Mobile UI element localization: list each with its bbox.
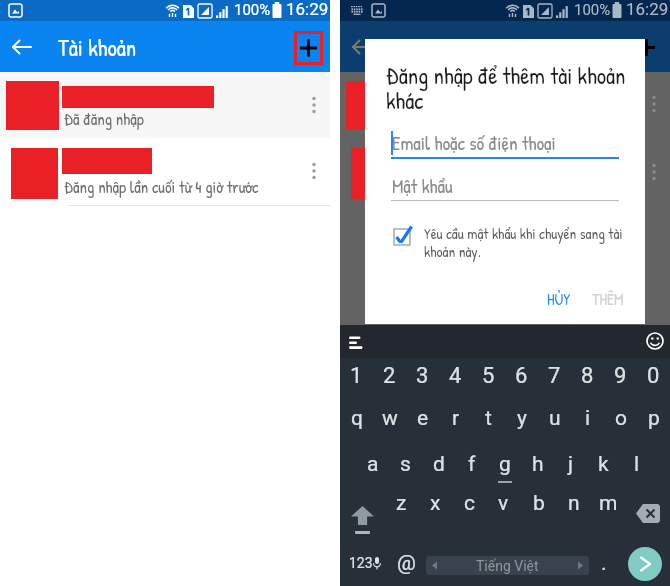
button[interactable]: Backspace [626,480,670,526]
button[interactable]: Enter [628,547,662,581]
staticText: x [430,491,441,516]
staticText: u [549,406,561,431]
staticText: 1 [350,363,363,389]
button[interactable]: q [340,395,373,441]
button[interactable]: d [422,441,455,487]
button[interactable]: 4 [439,354,472,398]
staticText: a [367,452,379,477]
button[interactable]: 2 [373,354,406,398]
button[interactable]: e [406,395,439,441]
button[interactable]: t [472,395,505,441]
staticText: o [615,406,627,431]
button[interactable]: x [418,480,452,526]
staticText: t [485,406,492,431]
button[interactable]: f [455,441,488,487]
staticText: THÊM [592,288,624,310]
button[interactable]: Add account [294,31,323,65]
staticText: d [433,452,445,477]
button[interactable]: r [439,395,472,441]
button[interactable]: Keyboard settings [342,328,370,356]
button[interactable]: k [587,441,620,487]
staticText: q [351,406,363,431]
staticText: 100% [234,1,271,19]
button[interactable]: More options [301,152,327,190]
staticText: e [417,406,429,431]
staticText: w [382,406,398,431]
button[interactable]: 7 [538,354,571,398]
staticText: Yêu cầu mật khẩu khi chuyển sang tài kho… [424,223,624,262]
button[interactable]: g [488,441,521,487]
staticText: HỦY [547,288,571,310]
button[interactable]: w [373,395,406,441]
button[interactable]: Emoji [641,327,669,355]
button[interactable]: j [554,441,587,487]
staticText: 100% [574,1,611,19]
staticText: 16:29 [286,0,329,19]
button[interactable]: Back [8,33,36,61]
button[interactable]: . [592,546,616,580]
button[interactable]: 0 [637,354,670,398]
button[interactable]: 1 [340,354,373,398]
staticText: j [568,452,574,477]
button[interactable]: n [556,480,591,526]
button[interactable]: o [604,395,637,441]
button[interactable]: THÊM [583,287,633,311]
button[interactable]: 6 [505,354,538,398]
button[interactable]: c [452,480,486,526]
button[interactable]: i [571,395,604,441]
staticText: v [498,491,509,516]
staticText: Mật khẩu [392,173,453,199]
button[interactable]: a [357,441,389,487]
button[interactable]: Tiếng Việt [426,556,589,575]
staticText: n [568,491,580,516]
button[interactable]: Numbers and voice input [344,549,386,577]
button[interactable]: z [384,480,418,526]
button[interactable]: 8 [571,354,604,398]
staticText: b [533,491,545,516]
staticText: p [648,406,660,431]
staticText: Đã đăng nhập [64,108,144,130]
staticText: r [452,406,460,431]
button[interactable]: More options [301,86,327,124]
staticText: Tài khoản [58,32,137,63]
staticText: . [601,551,607,576]
button[interactable]: @ [390,546,422,580]
button[interactable]: m [591,480,626,526]
button[interactable]: h [521,441,554,487]
staticText: 8 [581,363,594,389]
staticText: i [585,406,591,431]
staticText: 2 [383,363,396,389]
staticText: s [400,452,411,477]
staticText: 7 [548,363,561,389]
staticText: 4 [449,363,462,389]
staticText: k [598,452,609,477]
button[interactable]: HỦY [538,287,580,311]
staticText: l [634,452,640,477]
staticText: 123 [349,555,373,571]
button[interactable]: Đăng nhập lần cuối từ 4 giờ trước [0,138,330,206]
staticText: c [464,491,475,516]
button[interactable]: y [505,395,538,441]
button[interactable]: b [521,480,556,526]
staticText: z [396,491,407,516]
staticText: g [499,452,511,477]
button[interactable]: 9 [604,354,637,398]
button[interactable]: s [389,441,422,487]
button[interactable]: Yêu cầu mật khẩu khi chuyển sang tài kho… [394,229,624,268]
staticText: @ [397,551,416,576]
staticText: 16:29 [626,0,669,19]
button[interactable]: p [637,395,670,441]
staticText: f [468,452,476,477]
button[interactable]: Đã đăng nhập [0,72,330,138]
button[interactable]: l [620,441,653,487]
button[interactable]: 5 [472,354,505,398]
button[interactable]: Shift [340,480,384,526]
staticText: Email hoặc số điện thoại [392,130,556,156]
button[interactable]: 3 [406,354,439,398]
staticText: 3 [416,363,429,389]
button[interactable]: u [538,395,571,441]
staticText: Đăng nhập lần cuối từ 4 giờ trước [64,176,259,198]
staticText: 0 [647,363,660,389]
button[interactable]: v [486,480,521,526]
staticText: Đăng nhập để thêm tài khoản khác [386,60,626,116]
